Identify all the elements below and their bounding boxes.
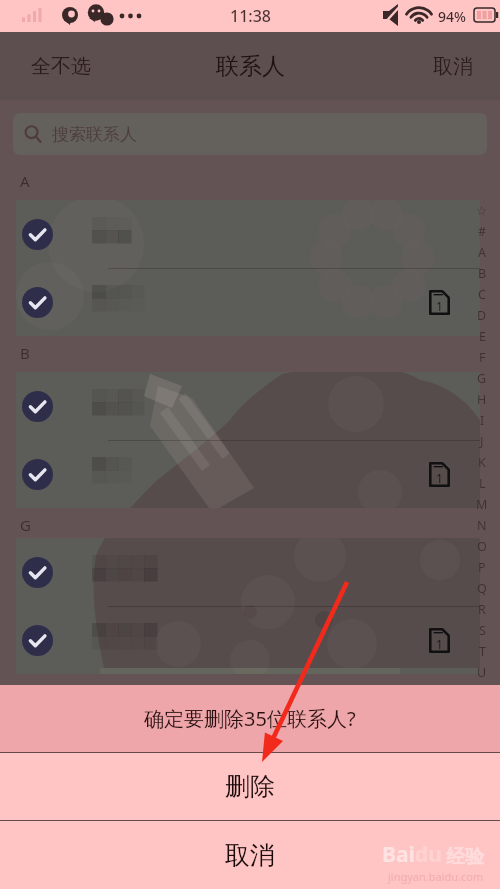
staticText: jingyan.baidu.com xyxy=(388,869,484,884)
staticText: G xyxy=(477,370,487,387)
other: Selected xyxy=(22,625,53,656)
staticText: R xyxy=(478,601,486,618)
button[interactable]: 搜索联系人 xyxy=(13,113,487,155)
staticText: Q xyxy=(477,580,487,597)
staticText: K xyxy=(478,454,486,471)
staticText: P xyxy=(478,559,486,576)
button[interactable]: Selected xyxy=(16,538,480,606)
staticText: I xyxy=(480,412,485,429)
button[interactable]: Selected xyxy=(16,200,480,268)
button[interactable]: 取消 xyxy=(433,54,473,79)
staticText: G xyxy=(20,515,31,535)
staticText: Bai xyxy=(382,840,415,869)
staticText: J xyxy=(480,433,484,450)
staticText: 删除 xyxy=(225,771,275,802)
other: Selected xyxy=(22,219,53,250)
staticText: T xyxy=(479,643,486,660)
staticText: S xyxy=(479,622,486,639)
other: Selected xyxy=(22,391,53,422)
other: Selected xyxy=(22,459,53,490)
button[interactable]: 删除 xyxy=(0,753,500,820)
button[interactable]: Selected xyxy=(16,372,480,440)
staticText: 确定要删除35位联系人? xyxy=(144,705,356,732)
staticText: 1 xyxy=(436,298,443,314)
button[interactable]: 取消 xyxy=(0,821,500,889)
button[interactable]: Selected xyxy=(16,606,480,674)
button[interactable]: 全不选 xyxy=(31,54,91,79)
other: Selected xyxy=(22,287,53,318)
staticText: 联系人 xyxy=(216,52,285,81)
staticText: 1 xyxy=(436,470,443,486)
staticText: N xyxy=(477,517,487,534)
staticText: B xyxy=(20,343,30,363)
staticText: 取消 xyxy=(225,840,275,871)
staticText: C xyxy=(478,286,486,303)
staticText: # xyxy=(478,223,487,240)
staticText: L xyxy=(479,475,486,492)
button[interactable]: Selected xyxy=(16,268,480,336)
staticText: du xyxy=(415,840,442,869)
staticText: D xyxy=(477,307,487,324)
staticText: 1 xyxy=(436,636,443,652)
other: Selected xyxy=(22,557,53,588)
staticText: 经验 xyxy=(446,845,484,869)
button[interactable]: Selected xyxy=(16,440,480,508)
staticText: 94% xyxy=(438,7,466,26)
staticText: 11:38 xyxy=(230,5,271,27)
staticText: 搜索联系人 xyxy=(52,124,137,145)
staticText: M xyxy=(476,496,488,513)
staticText: H xyxy=(477,391,487,408)
staticText: F xyxy=(479,349,486,366)
staticText: E xyxy=(479,328,486,345)
staticText: O xyxy=(477,538,487,555)
staticText: ☆ xyxy=(476,203,488,218)
staticText: A xyxy=(20,171,30,191)
staticText: A xyxy=(478,244,486,261)
staticText: U xyxy=(477,664,487,681)
staticText: B xyxy=(478,265,487,282)
